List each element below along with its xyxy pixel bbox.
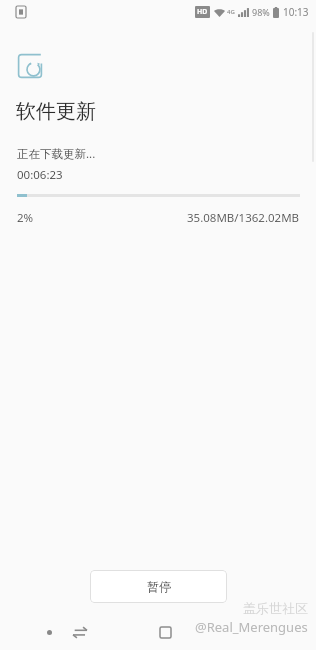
staticText: 10:13: [283, 5, 309, 19]
button[interactable]: 暂停: [90, 570, 227, 603]
staticText: @Real_Merengues: [195, 618, 308, 636]
button[interactable]: Recents: [34, 617, 64, 647]
staticText: HD: [197, 7, 208, 17]
staticText: 4G: [227, 8, 235, 16]
staticText: 98%: [252, 6, 270, 18]
staticText: 暂停: [147, 579, 171, 594]
button[interactable]: Back: [63, 615, 97, 649]
staticText: 盖乐世社区: [243, 600, 308, 616]
button[interactable]: Home: [149, 616, 181, 648]
staticText: 00:06:23: [17, 167, 63, 183]
staticText: 正在下载更新...: [17, 146, 96, 162]
staticText: 2%: [17, 210, 34, 226]
staticText: 35.08MB/1362.02MB: [187, 210, 300, 226]
staticText: 软件更新: [16, 99, 96, 124]
